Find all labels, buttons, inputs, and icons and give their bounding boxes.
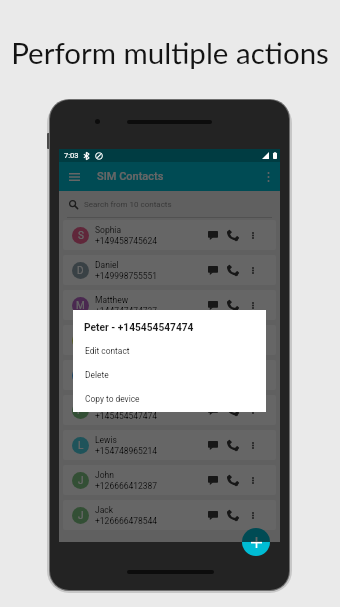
button[interactable]: More [246, 438, 260, 452]
button[interactable]: Message [206, 298, 220, 312]
staticText: +126666412387 [95, 481, 158, 491]
staticText: J [78, 510, 84, 522]
button[interactable]: Message [206, 473, 220, 487]
staticText: J [78, 475, 84, 487]
button[interactable]: L [63, 430, 276, 460]
staticText: +154748965214 [95, 446, 158, 456]
staticText: Daniel [95, 260, 119, 270]
staticText: Lewis [95, 435, 117, 445]
staticText: 7:03 [64, 151, 79, 160]
button[interactable]: D [63, 255, 276, 285]
button[interactable]: More [246, 403, 260, 417]
button[interactable]: More [246, 473, 260, 487]
button[interactable]: More [246, 508, 260, 522]
button[interactable]: E [63, 325, 276, 355]
staticText: Oliver [95, 365, 117, 375]
button[interactable]: Call [226, 263, 240, 277]
button[interactable]: Call [226, 298, 240, 312]
staticText: SIM Contacts [97, 170, 164, 183]
button[interactable]: More [246, 263, 260, 277]
button[interactable]: Message [206, 508, 220, 522]
staticText: +145478541122 [95, 341, 158, 351]
button[interactable]: P [63, 395, 276, 425]
staticText: +147852147852 [95, 376, 158, 386]
staticText: P [77, 405, 84, 417]
staticText: 7:03 [64, 151, 79, 160]
button[interactable]: More [246, 298, 260, 312]
staticText: Perform multiple actions [0, 35, 340, 70]
staticText: Emily [95, 330, 116, 340]
button[interactable]: Call [226, 508, 240, 522]
button[interactable]: J [63, 465, 276, 495]
staticText: Peter [95, 400, 115, 410]
button[interactable]: Call [226, 473, 240, 487]
staticText: +144747474737 [95, 306, 158, 316]
staticText: John [95, 470, 114, 480]
staticText: L [78, 440, 84, 452]
button[interactable]: Menu [67, 170, 81, 184]
staticText: +149998755551 [95, 271, 158, 281]
staticText: Delete [85, 370, 109, 380]
staticText: +145454547474 [95, 411, 158, 421]
button[interactable]: M [63, 290, 276, 320]
staticText: +149458745624 [95, 236, 158, 246]
button[interactable]: O [63, 360, 276, 390]
button[interactable]: S [63, 220, 276, 250]
staticText: Jack [95, 505, 114, 515]
button[interactable]: Call [226, 228, 240, 242]
staticText: M [76, 300, 85, 312]
button[interactable]: Message [206, 403, 220, 417]
staticText: Copy to device [85, 394, 140, 404]
button[interactable]: Call [226, 438, 240, 452]
staticText: D [77, 265, 84, 277]
button[interactable]: Message [206, 438, 220, 452]
button[interactable]: Message [206, 263, 220, 277]
button[interactable]: More options [261, 170, 275, 184]
button[interactable]: Add contact [242, 528, 270, 556]
staticText: +126666478544 [95, 516, 158, 526]
button[interactable]: J [63, 500, 276, 530]
button[interactable]: Copy to device [73, 387, 266, 411]
button[interactable]: Message [206, 228, 220, 242]
button[interactable]: Delete [73, 363, 266, 387]
button[interactable]: Edit contact [73, 339, 266, 363]
button[interactable]: More [246, 228, 260, 242]
staticText: Search from 10 contacts [84, 200, 172, 209]
staticText: S [78, 230, 84, 242]
staticText: Edit contact [85, 346, 130, 356]
staticText: Matthew [95, 295, 129, 305]
button[interactable]: Call [226, 403, 240, 417]
staticText: Sophia [95, 225, 122, 235]
staticText: Peter - +145454547474 [84, 322, 194, 334]
